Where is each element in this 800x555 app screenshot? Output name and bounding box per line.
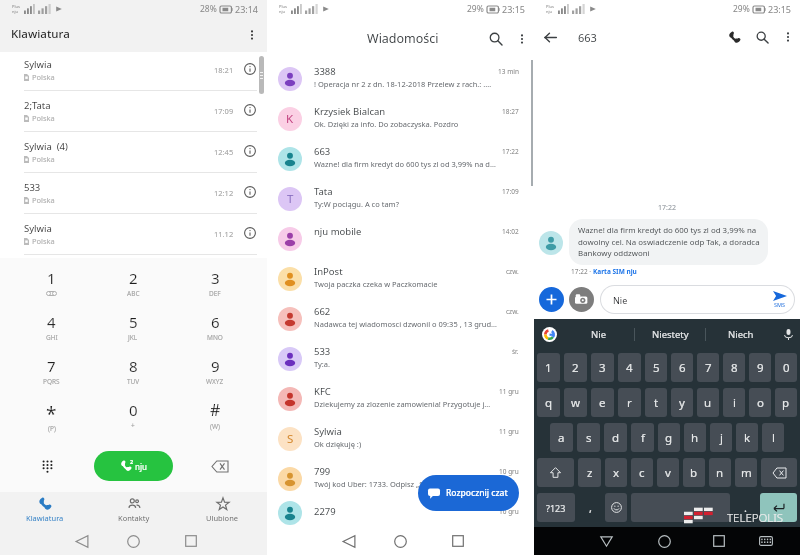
button[interactable]: Backspace <box>173 451 267 481</box>
button[interactable]: Kontakty <box>89 492 178 527</box>
button[interactable]: Home <box>648 527 680 555</box>
button[interactable]: 2279 <box>267 499 534 527</box>
button[interactable]: 1 <box>11 261 92 305</box>
button[interactable]: , <box>579 493 601 522</box>
button[interactable]: Call details <box>241 101 259 119</box>
button[interactable]: Sylwia (4) <box>0 132 267 172</box>
button[interactable]: Search <box>748 23 776 51</box>
button[interactable]: y <box>671 388 693 417</box>
button[interactable]: Call details <box>241 183 259 201</box>
button[interactable]: 5 <box>645 353 667 382</box>
button[interactable]: f <box>631 423 654 452</box>
button[interactable]: 0 <box>92 393 174 437</box>
button[interactable]: * <box>11 393 92 437</box>
button[interactable]: Recents <box>439 527 477 555</box>
button[interactable]: Home <box>114 527 152 555</box>
button[interactable]: e <box>591 388 614 417</box>
button[interactable]: 2 <box>92 261 174 305</box>
button[interactable]: Add attachment <box>539 287 564 312</box>
button[interactable]: t <box>645 388 667 417</box>
button[interactable]: 0 <box>775 353 797 382</box>
button[interactable]: r <box>618 388 641 417</box>
button[interactable]: Hide keyboard <box>750 527 782 555</box>
button[interactable]: Recents <box>172 527 210 555</box>
button[interactable]: h <box>684 423 706 452</box>
button[interactable] <box>605 493 627 522</box>
button[interactable]: k <box>736 423 758 452</box>
button[interactable]: 9 <box>174 349 256 393</box>
button[interactable]: 8 <box>723 353 745 382</box>
button[interactable]: 3 <box>591 353 614 382</box>
button[interactable]: s <box>577 423 600 452</box>
button[interactable]: S <box>267 419 534 459</box>
button[interactable]: Camera <box>569 287 594 312</box>
button[interactable]: 4 <box>11 305 92 349</box>
button[interactable]: w <box>564 388 587 417</box>
button[interactable]: nju mobile <box>267 219 534 259</box>
button[interactable]: More options <box>510 27 534 51</box>
button[interactable] <box>760 493 797 522</box>
button[interactable]: Recents <box>703 527 735 555</box>
button[interactable]: More options <box>237 20 267 50</box>
button[interactable]: u <box>697 388 719 417</box>
button[interactable]: 5 <box>92 305 174 349</box>
button[interactable]: x <box>605 458 627 487</box>
button[interactable]: # <box>174 393 256 437</box>
button[interactable] <box>631 493 730 522</box>
button[interactable]: 533 <box>267 339 534 379</box>
button[interactable]: n <box>709 458 731 487</box>
button[interactable]: g <box>658 423 680 452</box>
button[interactable]: Search <box>482 25 510 53</box>
button[interactable]: z <box>578 458 601 487</box>
button[interactable]: Ulubione <box>178 492 267 527</box>
button[interactable]: Call details <box>241 142 259 160</box>
button[interactable]: 8 <box>92 349 174 393</box>
button[interactable]: ?123 <box>537 493 575 522</box>
button[interactable]: Niech <box>706 319 776 350</box>
button[interactable]: m <box>735 458 757 487</box>
button[interactable]: 2 <box>564 353 587 382</box>
button[interactable]: q <box>537 388 560 417</box>
button[interactable]: 6 <box>174 305 256 349</box>
button[interactable]: 799 <box>267 459 534 499</box>
button[interactable]: Call details <box>241 224 259 242</box>
button[interactable]: Nie <box>564 319 634 350</box>
button[interactable]: K <box>267 99 534 139</box>
button[interactable]: Voice input <box>776 319 800 350</box>
button[interactable]: 9 <box>749 353 771 382</box>
button[interactable]: a <box>550 423 573 452</box>
button[interactable]: InPost <box>267 259 534 299</box>
button[interactable]: Back <box>590 527 622 555</box>
button[interactable]: 663 <box>267 139 534 179</box>
button[interactable]: Back <box>330 527 368 555</box>
button[interactable] <box>537 458 574 487</box>
button[interactable]: Sylwia <box>0 214 267 254</box>
button[interactable]: 533 <box>0 173 267 213</box>
button[interactable]: 3388 <box>267 59 534 99</box>
button[interactable]: Rozpocznij czat <box>418 475 519 511</box>
button[interactable]: Call details <box>241 60 259 78</box>
button[interactable]: i <box>723 388 745 417</box>
button[interactable]: 7 <box>697 353 719 382</box>
button[interactable]: Back <box>534 21 566 53</box>
button[interactable]: b <box>683 458 705 487</box>
button[interactable]: Back <box>63 527 101 555</box>
button[interactable]: Call <box>720 23 748 51</box>
button[interactable]: 3 <box>174 261 256 305</box>
button[interactable]: 662 <box>267 299 534 339</box>
button[interactable]: 2 <box>94 451 173 481</box>
button[interactable]: 6 <box>671 353 693 382</box>
button[interactable]: 1 <box>537 353 560 382</box>
button[interactable]: l <box>762 423 784 452</box>
button[interactable]: v <box>657 458 679 487</box>
button[interactable]: Home <box>381 527 419 555</box>
button[interactable]: T <box>267 179 534 219</box>
button[interactable]: o <box>749 388 771 417</box>
button[interactable]: 4 <box>618 353 641 382</box>
button[interactable]: More options <box>776 25 800 49</box>
button[interactable]: Sylwia <box>0 50 267 90</box>
button[interactable]: Keypad <box>0 451 94 481</box>
button[interactable]: p <box>775 388 797 417</box>
button[interactable]: 7 <box>11 349 92 393</box>
button[interactable]: KFC <box>267 379 534 419</box>
